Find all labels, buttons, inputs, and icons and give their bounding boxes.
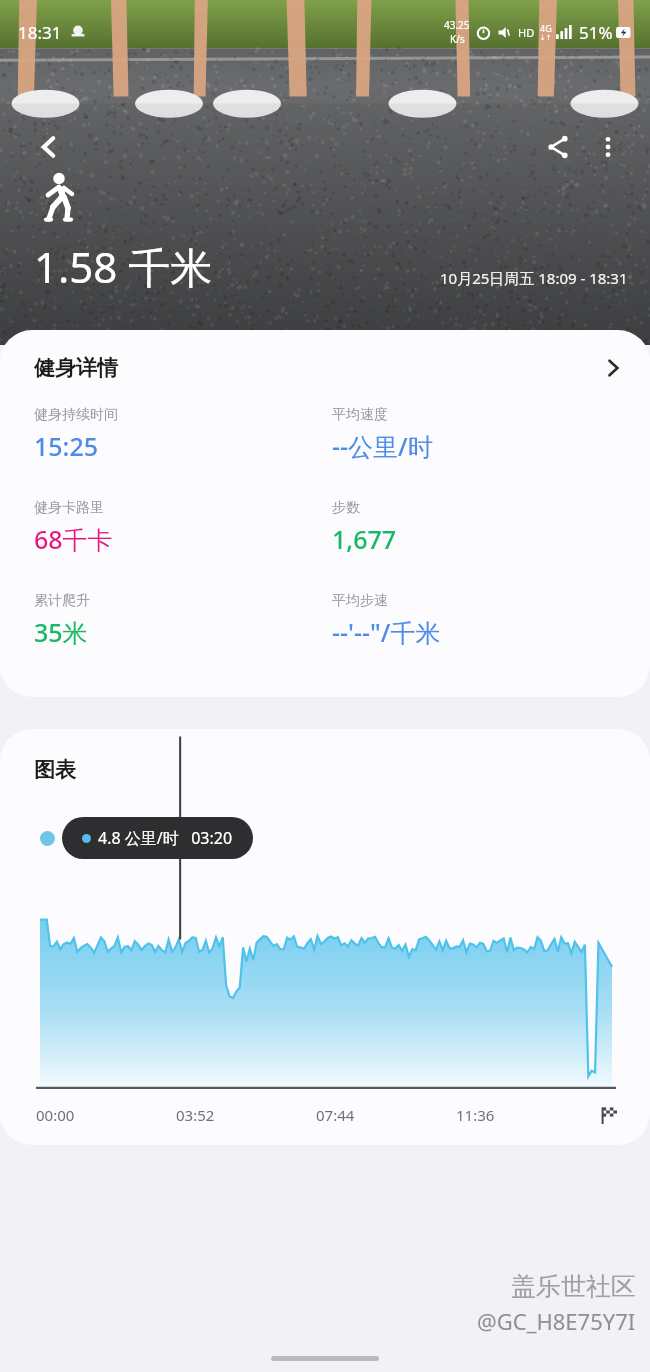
staticText: 18:31 (18, 21, 62, 44)
staticText: 健身持续时间 (34, 406, 118, 424)
button[interactable]: 健身详情 (0, 330, 650, 406)
staticText: 平均步速 (332, 592, 388, 610)
staticText: 步数 (332, 499, 360, 517)
staticText: 11:36 (456, 1105, 596, 1125)
staticText: 累计爬升 (34, 592, 90, 610)
staticText: 03:52 (176, 1105, 316, 1125)
staticText: 51% (579, 21, 613, 44)
staticText: --公里/时 (332, 429, 433, 463)
staticText: @GC_H8E75Y7I (477, 1306, 636, 1336)
staticText: 35米 (34, 615, 88, 649)
staticText: --'--"/千米 (332, 615, 441, 649)
staticText: 43.25 (444, 18, 470, 32)
staticText: 00:00 (36, 1105, 176, 1125)
staticText: 07:44 (316, 1105, 456, 1125)
staticText: 盖乐世社区 (511, 1271, 636, 1302)
staticText: K/s (450, 32, 465, 46)
staticText: 4G (540, 22, 552, 34)
staticText: 健身详情 (34, 355, 118, 381)
staticText: 68千卡 (34, 522, 113, 556)
staticText: 健身卡路里 (34, 499, 104, 517)
staticText: 1,677 (332, 522, 397, 556)
button[interactable]: 4.8 公里/时 03:20 (62, 817, 253, 859)
staticText: 10月25日周五 18:09 - 18:31 (440, 268, 628, 288)
staticText: 平均速度 (332, 406, 388, 424)
button[interactable]: More options (584, 123, 632, 171)
button[interactable]: Back (26, 124, 72, 170)
button[interactable]: Share (532, 121, 584, 173)
staticText: 15:25 (34, 429, 99, 463)
staticText: 图表 (34, 757, 76, 783)
staticText: HD (518, 25, 535, 40)
staticText: 4.8 公里/时 03:20 (98, 827, 233, 849)
staticText: ↓↑ (540, 34, 552, 42)
staticText: 1.58 千米 (34, 238, 213, 295)
